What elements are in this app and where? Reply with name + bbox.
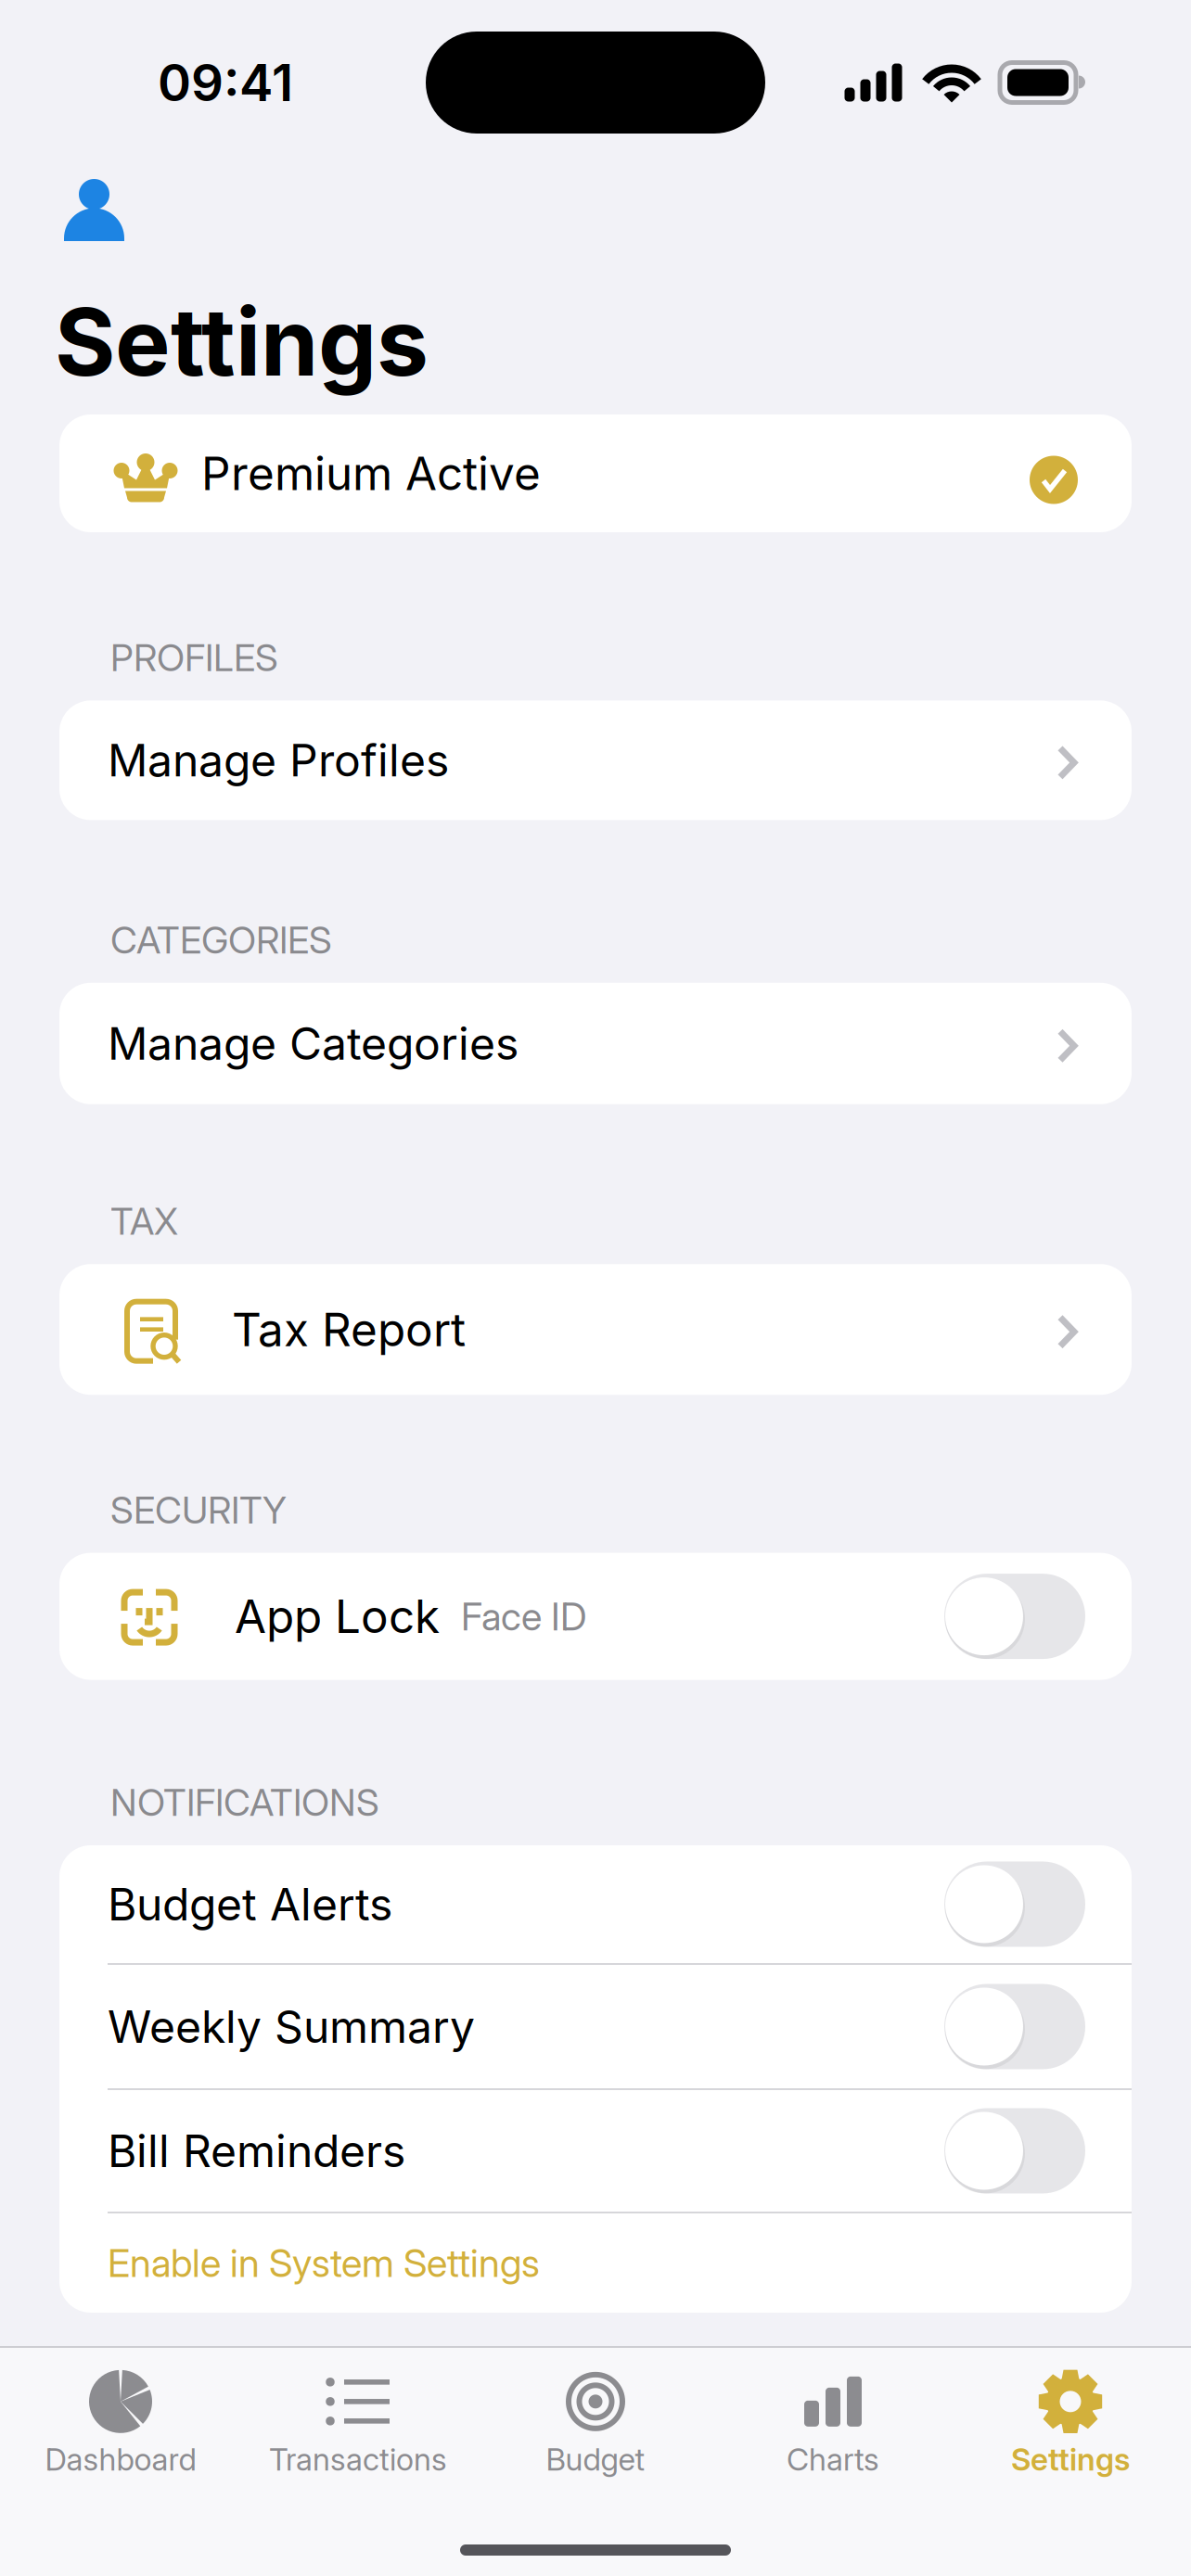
button[interactable]: Settings bbox=[952, 2370, 1189, 2480]
staticText: Manage Categories bbox=[108, 1017, 519, 1070]
button[interactable]: Budget bbox=[477, 2370, 714, 2480]
staticText: Enable in System Settings bbox=[108, 2240, 540, 2286]
staticText: Transactions bbox=[269, 2440, 447, 2478]
staticText: Premium Active bbox=[201, 446, 541, 501]
staticText: PROFILES bbox=[110, 635, 278, 680]
button[interactable]: Charts bbox=[714, 2370, 952, 2480]
staticText: Settings bbox=[55, 286, 429, 398]
staticText: NOTIFICATIONS bbox=[110, 1780, 379, 1825]
staticText: Weekly Summary bbox=[108, 2000, 475, 2053]
button[interactable]: Manage Categories bbox=[0, 983, 1191, 1104]
staticText: Bill Reminders bbox=[108, 2124, 405, 2178]
button[interactable]: Manage Profiles bbox=[0, 700, 1191, 820]
staticText: Budget Alerts bbox=[108, 1877, 392, 1931]
staticText: SECURITY bbox=[110, 1488, 287, 1532]
button[interactable]: Budget Alerts bbox=[59, 1845, 1132, 1963]
staticText: TAX bbox=[110, 1199, 178, 1244]
staticText: Budget bbox=[546, 2440, 645, 2478]
button[interactable]: Dashboard bbox=[2, 2370, 239, 2480]
staticText: 09:41 bbox=[158, 52, 293, 113]
staticText: Settings bbox=[1011, 2440, 1130, 2478]
button[interactable]: Transactions bbox=[239, 2370, 477, 2480]
staticText: Charts bbox=[787, 2440, 879, 2478]
staticText: Manage Profiles bbox=[108, 733, 449, 787]
staticText: Dashboard bbox=[45, 2440, 196, 2478]
button[interactable]: Bill Reminders bbox=[59, 2090, 1132, 2212]
staticText: App Lock bbox=[235, 1589, 440, 1644]
button[interactable]: Premium Active bbox=[0, 414, 1191, 532]
staticText: Tax Report bbox=[232, 1302, 466, 1357]
button[interactable]: Profile bbox=[0, 165, 158, 245]
button[interactable]: Enable in System Settings bbox=[59, 2213, 1132, 2313]
staticText: Face ID bbox=[461, 1593, 587, 1640]
button[interactable]: App Lock bbox=[0, 1553, 1191, 1680]
button[interactable]: Tax Report bbox=[0, 1264, 1191, 1395]
button[interactable]: Weekly Summary bbox=[59, 1965, 1132, 2088]
staticText: CATEGORIES bbox=[110, 917, 332, 962]
